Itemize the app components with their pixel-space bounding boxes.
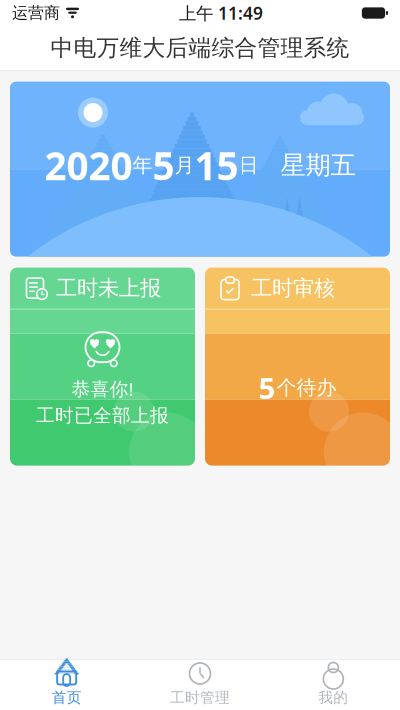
staticText: 我的 (318, 688, 348, 706)
button[interactable]: 工时审核 (205, 268, 390, 466)
staticText: 工时审核 (251, 275, 335, 301)
staticText: 星期五 (280, 150, 355, 181)
staticText: 恭喜你! (71, 376, 133, 401)
staticText: 15 (194, 140, 238, 191)
staticText: 日 (238, 153, 258, 178)
staticText: 2020 (44, 140, 132, 191)
staticText: 工时未上报 (56, 275, 161, 301)
staticText: 个待办 (276, 375, 336, 400)
staticText: 5 (258, 368, 275, 407)
staticText: 工时已全部上报 (36, 404, 169, 427)
button[interactable]: 工时管理 (133, 655, 267, 710)
staticText: 上午 11:49 (179, 1, 263, 24)
staticText: 月 (174, 153, 194, 178)
staticText: 年 (132, 153, 152, 178)
button[interactable]: 首页 (0, 655, 133, 710)
staticText: 首页 (52, 688, 82, 706)
button[interactable]: 我的 (267, 655, 400, 710)
staticText: 中电万维大后端综合管理系统 (50, 34, 349, 62)
staticText: 运营商 (12, 3, 60, 23)
staticText: 5 (152, 140, 174, 191)
staticText: 工时管理 (170, 688, 230, 706)
button[interactable]: 工时未上报 (10, 268, 195, 466)
